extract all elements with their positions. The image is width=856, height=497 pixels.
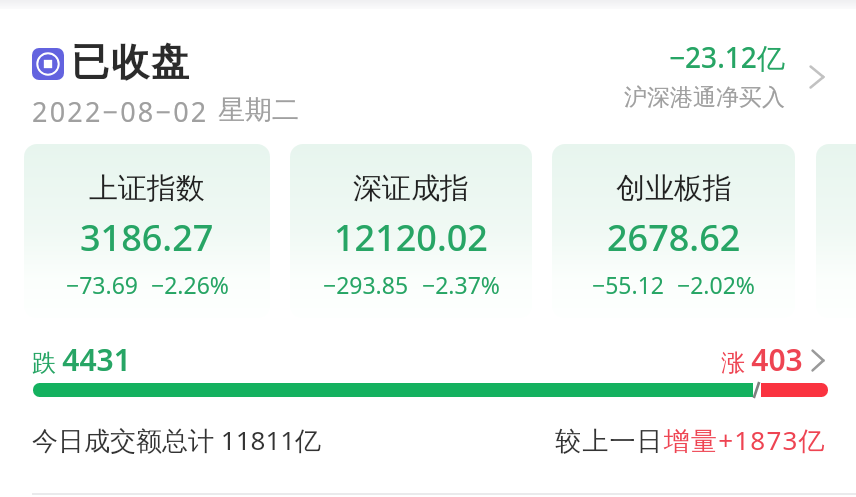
staticText: −73.69 xyxy=(66,269,138,300)
other: More northbound flow xyxy=(808,64,826,90)
button[interactable]: 上证指数 xyxy=(24,144,270,318)
staticText: 沪深港通净买入 xyxy=(624,83,785,112)
staticText: 3186.27 xyxy=(80,213,214,262)
staticText: −2.02% xyxy=(677,269,755,300)
button[interactable]: 深证成指 xyxy=(290,144,532,318)
staticText: 2022−08−02 xyxy=(32,93,209,130)
staticText: 上证指数 xyxy=(89,170,205,207)
staticText: −55.12 xyxy=(592,269,664,300)
button[interactable]: −23.12亿 xyxy=(615,38,830,116)
staticText: 创业板指 xyxy=(616,170,732,207)
staticText: 跌 4431 xyxy=(32,339,131,380)
staticText: −2.26% xyxy=(151,269,229,300)
staticText: 12120.02 xyxy=(334,213,488,262)
staticText: 2678.62 xyxy=(607,213,741,262)
staticText: −2.37% xyxy=(422,269,500,300)
staticText: −293.85 xyxy=(323,269,409,300)
button[interactable]: Market status xyxy=(32,48,64,80)
staticText: 涨 403 xyxy=(721,339,803,380)
button[interactable]: 科创50 xyxy=(816,144,856,318)
staticText: 已收盘 xyxy=(70,38,190,86)
staticText: 深证成指 xyxy=(353,170,469,207)
staticText: 今日成交额总计 11811亿 xyxy=(32,422,322,458)
other: Up down detail xyxy=(810,348,826,373)
button[interactable]: 跌 4431 xyxy=(24,334,832,404)
staticText: 较上一日增量+1873亿 xyxy=(555,422,826,458)
staticText: −23.12亿 xyxy=(669,38,785,76)
staticText: 星期二 xyxy=(218,93,299,127)
button[interactable]: 创业板指 xyxy=(552,144,795,318)
